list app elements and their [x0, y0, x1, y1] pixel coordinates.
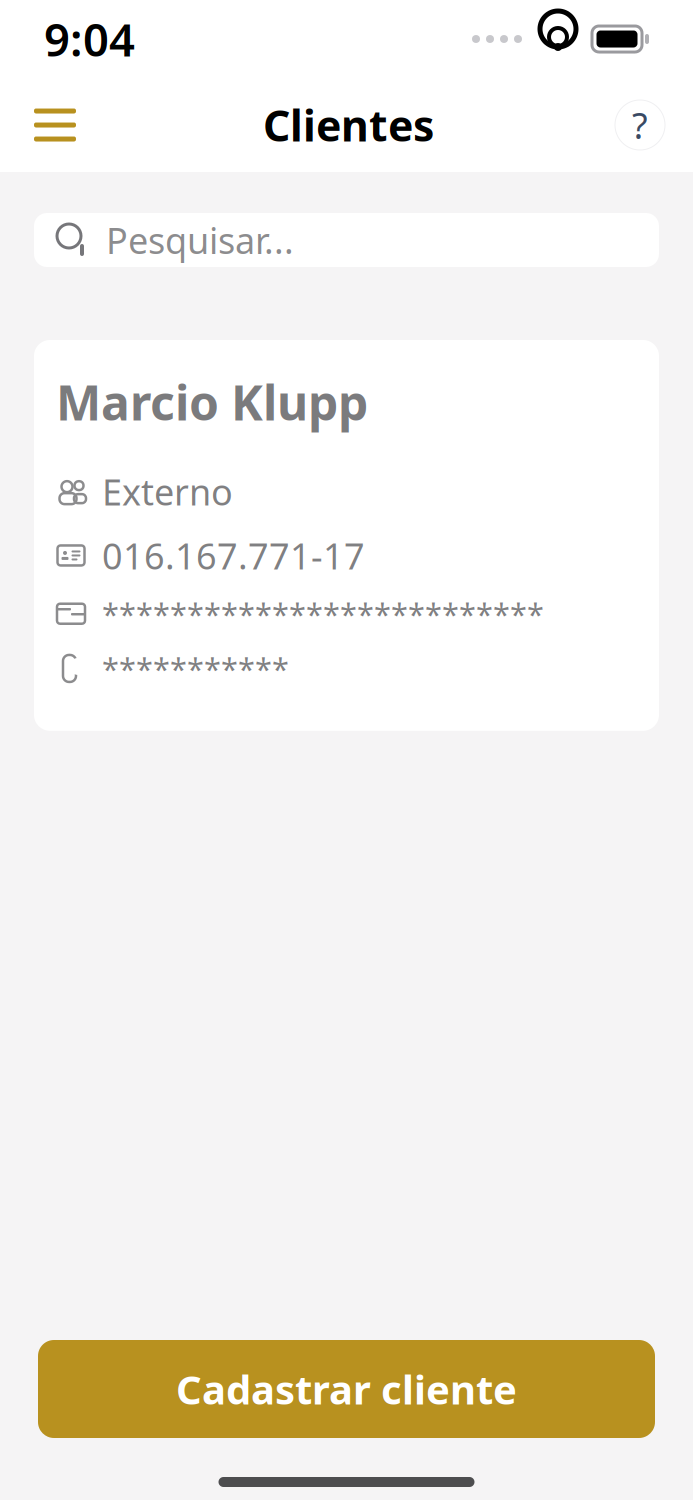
- staticText: 016.167.771-17: [102, 531, 365, 579]
- staticText: Cadastrar cliente: [176, 1362, 517, 1415]
- staticText: Pesquisar...: [106, 216, 294, 264]
- button[interactable]: Pesquisar...: [34, 213, 659, 267]
- button[interactable]: Marcio Klupp: [34, 340, 659, 731]
- staticText: Clientes: [263, 97, 434, 153]
- button[interactable]: Menu: [14, 90, 96, 159]
- staticText: ***********: [102, 648, 289, 689]
- staticText: 9:04: [44, 9, 135, 69]
- staticText: ?: [632, 101, 648, 149]
- button[interactable]: Ajuda: [601, 88, 679, 162]
- button[interactable]: Cadastrar cliente: [38, 1340, 655, 1438]
- staticText: **************************: [102, 593, 544, 634]
- staticText: Marcio Klupp: [56, 370, 368, 434]
- staticText: Externo: [102, 468, 233, 515]
